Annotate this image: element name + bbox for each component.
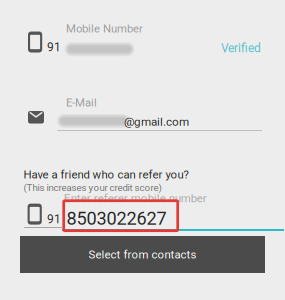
staticText: (This increases your credit score) [23, 182, 161, 193]
staticText: @gmail.com [124, 115, 189, 129]
button[interactable]: Verified [221, 41, 261, 55]
staticText: Have a friend who can refer you? [23, 168, 188, 181]
staticText: E-Mail [66, 96, 97, 109]
staticText: Verified [221, 41, 261, 55]
staticText: 91 [47, 212, 61, 226]
staticText: Mobile Number [66, 22, 143, 35]
staticText: Select from contacts [88, 248, 196, 261]
button[interactable]: Select from contacts [20, 236, 265, 273]
staticText: 91 [47, 40, 61, 54]
staticText: 8503022627 [66, 208, 166, 229]
staticText: Enter referer mobile number [64, 191, 207, 205]
